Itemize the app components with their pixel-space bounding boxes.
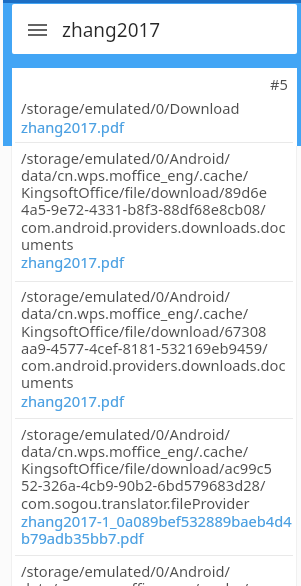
staticText: data/cn.wps.moffice_eng/.cache/	[21, 578, 249, 586]
staticText: com.android.providers.downloads.doc	[21, 217, 286, 237]
staticText: zhang2017	[62, 17, 161, 43]
other: Open navigation menu	[28, 24, 47, 38]
staticText: zhang2017-1_0a089bef532889baeb4d4	[21, 511, 292, 531]
staticText: /storage/emulated/0/Android/	[21, 561, 230, 581]
staticText: KingsoftOffice/file/download/ac99c5	[21, 458, 273, 478]
button[interactable]	[12, 555, 297, 586]
staticText: com.android.providers.downloads.doc	[21, 355, 286, 375]
staticText: /storage/emulated/0/Android/	[21, 424, 230, 444]
button[interactable]	[12, 4, 297, 54]
staticText: uments	[21, 372, 74, 392]
staticText: zhang2017.pdf	[21, 391, 124, 411]
staticText: 52-326a-4cb9-90b2-6bd579683d28/	[21, 475, 266, 495]
staticText: b79adb35bb7.pdf	[21, 528, 144, 548]
button[interactable]	[12, 146, 297, 281]
staticText: KingsoftOffice/file/download/89d6e	[21, 182, 267, 202]
staticText: data/cn.wps.moffice_eng/.cache/	[21, 165, 249, 185]
staticText: KingsoftOffice/file/download/67308	[21, 321, 267, 341]
button[interactable]	[12, 281, 297, 419]
staticText: aa9-4577-4cef-8181-532169eb9459/	[21, 338, 268, 358]
staticText: 4a5-9e72-4331-b8f3-88df68e8cb08/	[21, 199, 266, 219]
staticText: uments	[21, 234, 74, 254]
staticText: zhang2017.pdf	[21, 117, 124, 137]
staticText: /storage/emulated/0/Android/	[21, 148, 230, 168]
staticText: com.sogou.translator.fileProvider	[21, 493, 250, 513]
staticText: data/cn.wps.moffice_eng/.cache/	[21, 441, 249, 461]
button[interactable]	[12, 418, 297, 555]
staticText: /storage/emulated/0/Download	[21, 98, 240, 118]
staticText: zhang2017.pdf	[21, 252, 124, 272]
button[interactable]	[12, 68, 297, 146]
staticText: /storage/emulated/0/Android/	[21, 286, 230, 306]
staticText: data/cn.wps.moffice_eng/.cache/	[21, 303, 249, 323]
staticText: #5	[12, 74, 288, 94]
